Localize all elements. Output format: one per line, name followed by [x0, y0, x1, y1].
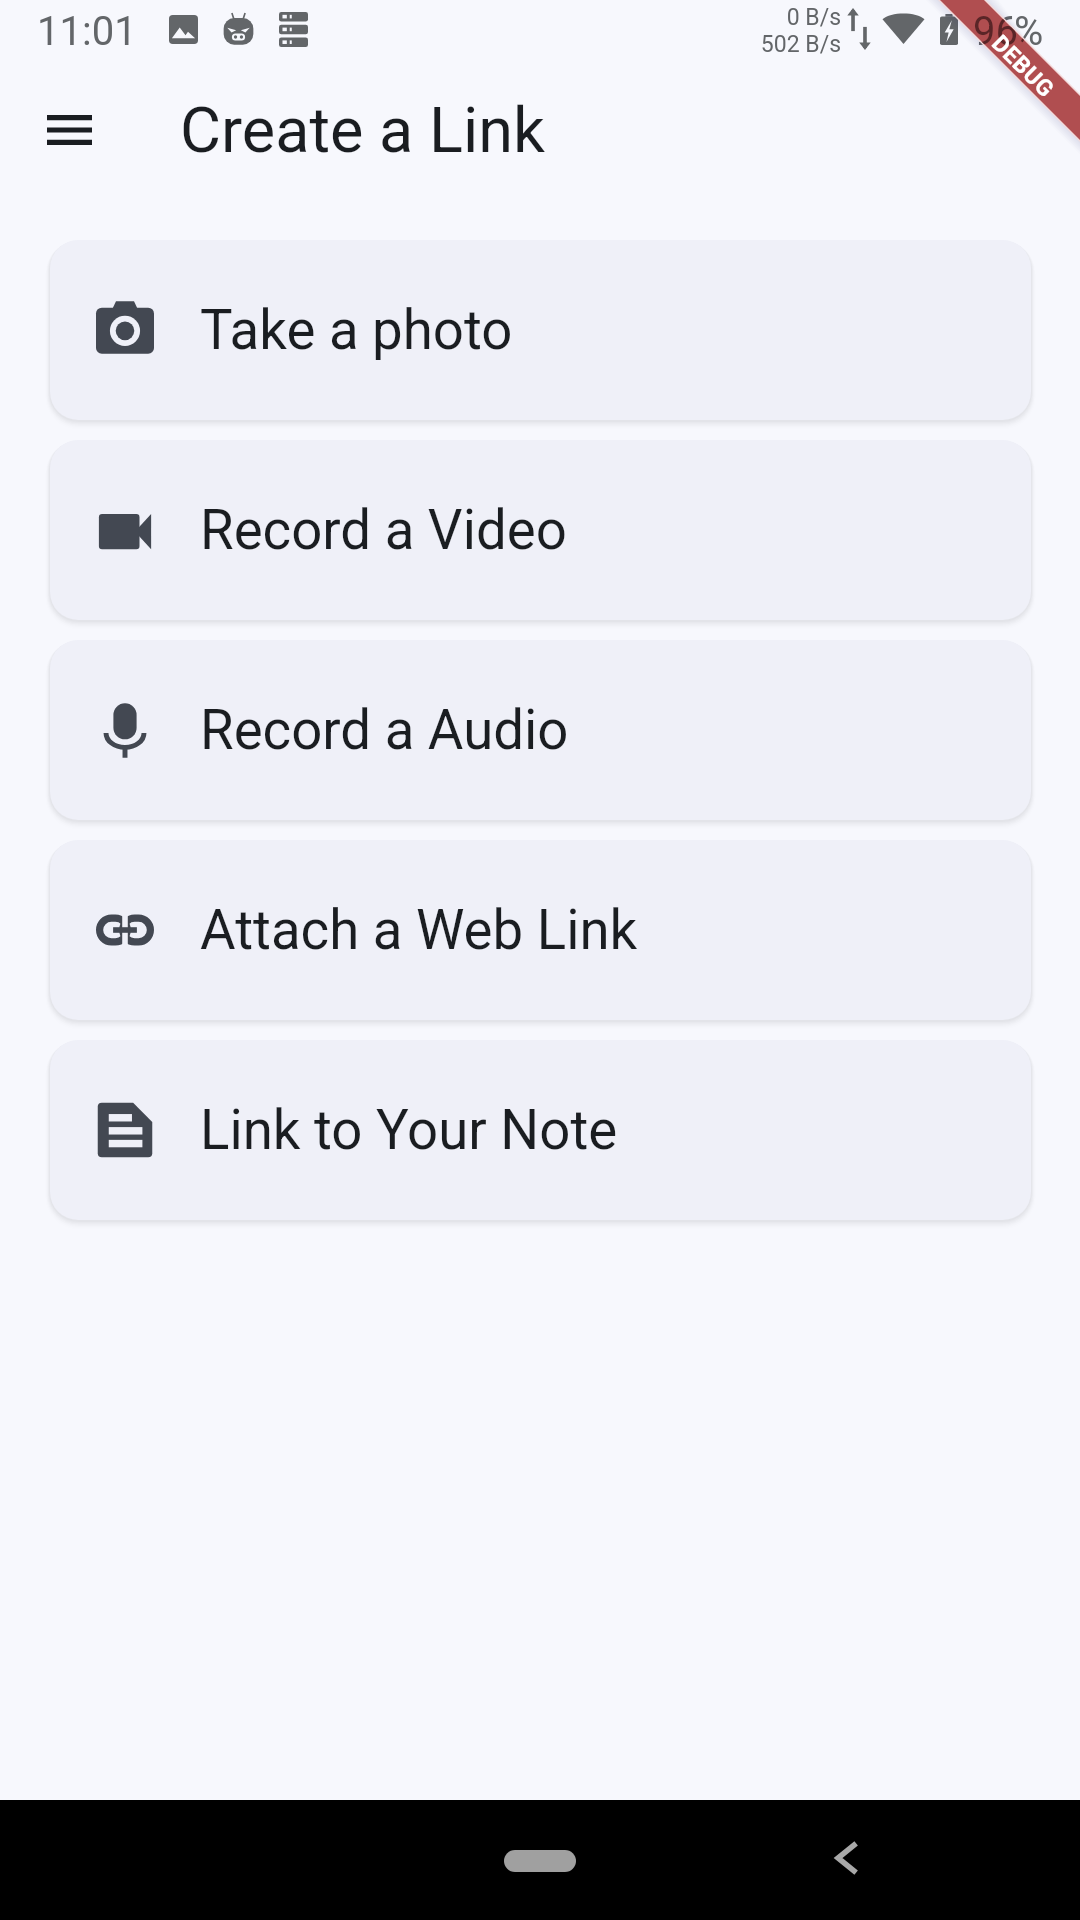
staticText: % [1014, 8, 1044, 55]
staticText: Link to Your Note [200, 1098, 618, 1162]
staticText: Create a Link [180, 94, 545, 168]
staticText: Record a Audio [200, 698, 569, 762]
button[interactable]: Record a Video [50, 440, 1031, 620]
staticText: 0 B/s [741, 4, 841, 31]
button[interactable]: Link to Your Note [50, 1040, 1031, 1220]
staticText: 11:01 [37, 8, 137, 55]
button[interactable]: Attach a Web Link [50, 840, 1031, 1020]
staticText: 96 [973, 8, 1018, 55]
button[interactable]: Take a photo [50, 240, 1031, 420]
button[interactable]: Record a Audio [50, 640, 1031, 820]
staticText: DEBUG [986, 30, 1060, 103]
button[interactable]: Back [816, 1828, 876, 1888]
staticText: 502 B/s [741, 31, 841, 58]
staticText: Record a Video [200, 498, 567, 562]
staticText: 96 [973, 8, 1018, 55]
button[interactable]: Open navigation menu [20, 81, 118, 179]
staticText: Attach a Web Link [200, 898, 638, 962]
staticText: % [1014, 8, 1044, 55]
staticText: Take a photo [200, 298, 513, 362]
button[interactable]: Home [504, 1850, 576, 1872]
